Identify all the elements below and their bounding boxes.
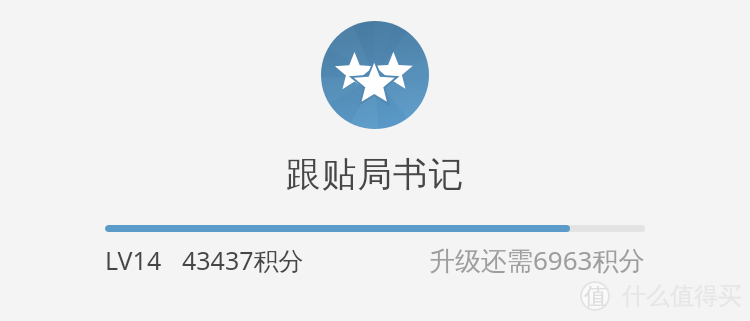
button[interactable]: Level progress, 87 percent [105,225,645,232]
button[interactable]: LV14 [105,243,304,277]
staticText: 43437积分 [182,243,304,277]
staticText: LV14 [105,243,162,277]
button[interactable]: User avatar [321,21,429,129]
button[interactable]: 升级还需6963积分 [429,242,645,278]
other: SMZDM logo [580,281,610,311]
button[interactable]: 跟贴局书记 [286,153,465,196]
staticText: 值 [584,282,607,311]
staticText: 什么值得买 [622,281,742,311]
